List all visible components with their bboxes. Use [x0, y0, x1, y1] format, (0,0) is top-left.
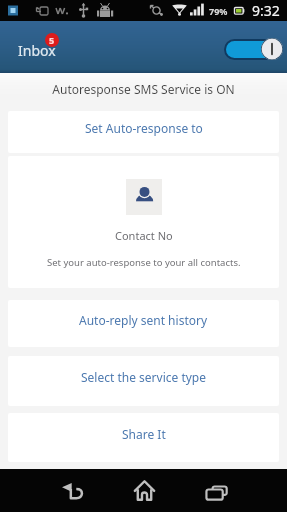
staticText: Set your auto-response to your all conta…	[47, 256, 241, 269]
button[interactable]: Share It	[8, 413, 279, 462]
staticText: Autoresponse SMS Service is ON	[52, 81, 235, 97]
button[interactable]: Back	[52, 475, 92, 506]
button[interactable]: Service toggle	[224, 38, 283, 60]
staticText: 79%	[209, 5, 228, 17]
button[interactable]: Recent apps	[197, 477, 237, 508]
button[interactable]: Home	[124, 475, 164, 506]
button[interactable]: Set Auto-response to	[8, 111, 279, 153]
button[interactable]: Contact No	[8, 156, 279, 288]
button[interactable]: Select the service type	[8, 356, 279, 406]
staticText: Select the service type	[81, 369, 206, 385]
staticText: 5	[49, 34, 55, 46]
button[interactable]: Inbox	[18, 41, 56, 60]
staticText: Set Auto-response to	[85, 120, 203, 136]
staticText: Contact No	[115, 228, 173, 243]
button[interactable]: Auto-reply sent history	[8, 300, 279, 347]
staticText: Auto-reply sent history	[79, 312, 208, 328]
staticText: Inbox	[18, 41, 56, 60]
staticText: 9:32	[252, 1, 280, 20]
staticText: Share It	[122, 426, 166, 442]
